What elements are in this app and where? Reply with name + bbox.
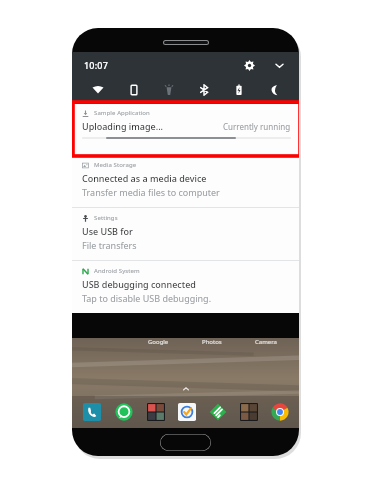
button[interactable]: WhatsApp (108, 399, 140, 425)
staticText: Google (148, 338, 169, 346)
button[interactable]: Home (160, 434, 211, 451)
staticText: Tap to disable USB debugging. (82, 292, 212, 304)
staticText: Settings (94, 214, 118, 222)
button[interactable]: Expand (269, 55, 289, 75)
staticText: 10:07 (84, 59, 109, 71)
staticText: Media Storage (94, 161, 137, 169)
staticText: Android System (94, 267, 140, 275)
staticText: Camera (255, 338, 277, 346)
button[interactable]: Battery saver (221, 78, 256, 102)
button[interactable]: Android System (72, 261, 299, 313)
button[interactable]: Photo folder (140, 399, 171, 425)
button[interactable]: Chrome (264, 399, 295, 425)
button[interactable]: Do not disturb (256, 78, 291, 102)
staticText: Connected as a media device (82, 172, 207, 184)
staticText: Currently running (223, 121, 291, 132)
button[interactable]: Sample Application (72, 104, 299, 154)
button[interactable]: Tick (171, 399, 202, 425)
staticText: File transfers (82, 239, 137, 251)
button[interactable]: Feedly (202, 399, 233, 425)
staticText: Sample Application (94, 109, 150, 117)
button[interactable]: Bluetooth (186, 78, 221, 102)
button[interactable]: Auto rotate (116, 78, 151, 102)
button[interactable]: Open app drawer (179, 382, 193, 396)
button[interactable]: Wi-Fi (80, 78, 116, 102)
staticText: Photos (202, 338, 222, 346)
staticText: Transfer media files to computer (82, 186, 220, 198)
staticText: USB debugging connected (82, 278, 196, 290)
button[interactable]: Settings (72, 208, 299, 260)
staticText: Uploading image... (82, 120, 164, 132)
staticText: Use USB for (82, 225, 133, 237)
button[interactable]: Gallery folder (233, 399, 264, 425)
button[interactable]: Media Storage (72, 155, 299, 207)
button[interactable]: Flashlight (151, 78, 186, 102)
button[interactable]: Phone (76, 399, 108, 425)
button[interactable]: Settings (239, 55, 259, 75)
